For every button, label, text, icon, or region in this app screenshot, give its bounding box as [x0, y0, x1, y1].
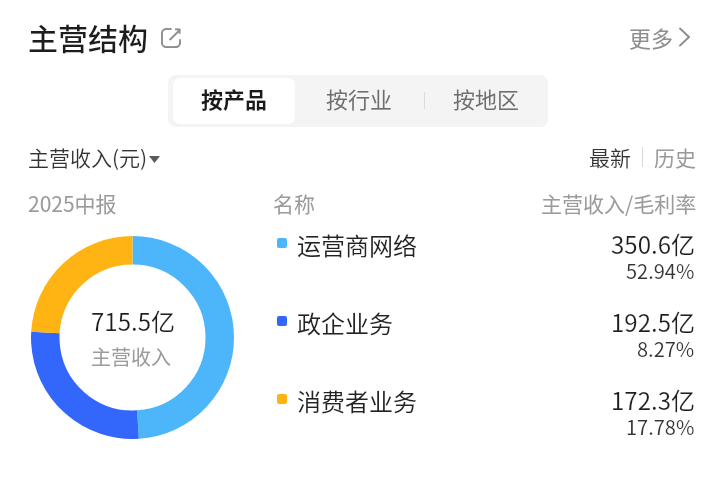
staticText: 52.94%: [626, 256, 695, 285]
staticText: 更多: [629, 21, 674, 53]
button[interactable]: 主营结构: [28, 15, 181, 58]
button[interactable]: 运营商网络: [0, 218, 720, 282]
staticText: 按产品: [201, 82, 268, 114]
staticText: 17.78%: [626, 412, 695, 441]
staticText: 最新: [589, 142, 631, 172]
staticText: 2025中报: [28, 188, 117, 218]
button[interactable]: 最新: [589, 142, 631, 172]
staticText: 消费者业务: [297, 383, 417, 418]
button[interactable]: 消费者业务: [0, 374, 720, 438]
button[interactable]: 历史: [654, 142, 696, 172]
button[interactable]: 按地区: [425, 75, 548, 127]
staticText: 运营商网络: [297, 227, 417, 262]
button[interactable]: 按行业: [295, 75, 424, 127]
staticText: 192.5亿: [611, 304, 695, 339]
staticText: 主营收入: [91, 342, 171, 371]
button[interactable]: 主营收入(元): [28, 142, 160, 172]
staticText: 715.5亿: [91, 303, 175, 338]
staticText: 按行业: [326, 82, 393, 114]
staticText: 172.3亿: [611, 382, 695, 417]
other: Open in new window: [161, 28, 181, 48]
staticText: 名称: [273, 188, 315, 218]
staticText: 主营收入/毛利率: [541, 188, 697, 218]
staticText: 政企业务: [297, 305, 393, 340]
staticText: 350.6亿: [611, 226, 695, 261]
staticText: 8.27%: [637, 334, 695, 363]
staticText: 主营结构: [28, 15, 148, 58]
staticText: 历史: [654, 142, 696, 172]
staticText: 主营收入(元): [28, 142, 148, 172]
staticText: 按地区: [453, 82, 520, 114]
button[interactable]: 政企业务: [0, 296, 720, 360]
button[interactable]: 按产品: [173, 78, 295, 124]
button[interactable]: 更多: [629, 21, 690, 53]
